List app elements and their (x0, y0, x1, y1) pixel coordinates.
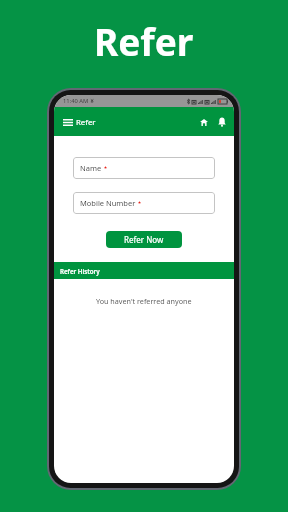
button[interactable]: Refer Now (106, 231, 182, 248)
staticText: Refer History (60, 267, 100, 275)
button[interactable]: Open navigation menu (61, 115, 75, 129)
staticText: 11:40 AM (63, 97, 89, 105)
button[interactable]: Name (73, 157, 215, 179)
staticText: Name (80, 163, 102, 173)
staticText: Refer Now (124, 234, 164, 245)
staticText: You haven't referred anyone (96, 296, 192, 306)
staticText: Mobile Number (80, 198, 136, 208)
staticText: Refer (94, 16, 194, 66)
button[interactable]: Notifications (215, 115, 229, 129)
button[interactable]: Home (197, 115, 211, 129)
staticText: Refer (76, 117, 96, 128)
button[interactable]: Mobile Number (73, 192, 215, 214)
